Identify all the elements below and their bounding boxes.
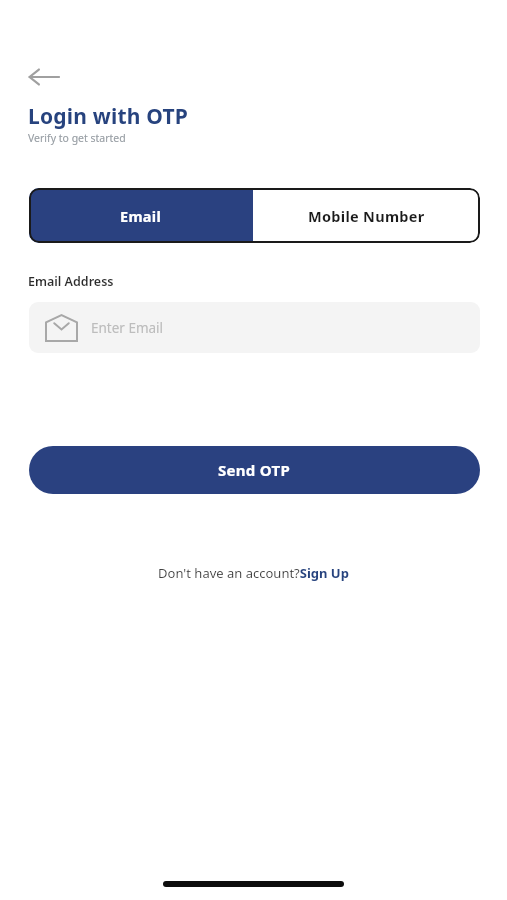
button[interactable]: Email	[29, 188, 253, 243]
staticText: Enter Email	[91, 319, 164, 337]
staticText: Email Address	[28, 273, 114, 290]
button[interactable]: Don't have an account?Sign Up	[158, 564, 349, 582]
button[interactable]: Mobile Number	[253, 188, 480, 243]
staticText: Email	[120, 206, 162, 226]
button[interactable]: Back	[22, 60, 66, 94]
button[interactable]: Enter Email	[29, 302, 480, 353]
staticText: Verify to get started	[28, 131, 126, 145]
staticText: Mobile Number	[308, 206, 425, 226]
staticText: Login with OTP	[28, 102, 188, 131]
staticText: Don't have an account?Sign Up	[158, 564, 349, 582]
button[interactable]: Send OTP	[29, 446, 480, 494]
staticText: Send OTP	[218, 460, 291, 480]
